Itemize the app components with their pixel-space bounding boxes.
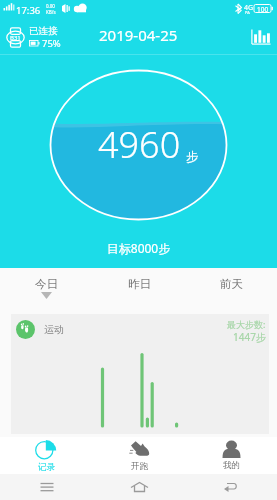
staticText: 开跑 (131, 461, 148, 472)
staticText: PA (245, 10, 250, 15)
staticText: 我的 (223, 460, 240, 471)
button[interactable]: 记录 (0, 437, 93, 474)
button[interactable]: 我的 (185, 437, 277, 474)
button[interactable]: 开跑 (93, 437, 185, 474)
staticText: 1447步 (233, 330, 266, 344)
staticText: 100 (257, 5, 269, 14)
staticText: 步 (186, 149, 199, 165)
staticText: 4960 (98, 120, 181, 169)
staticText: 前天 (220, 277, 243, 291)
button[interactable]: Statistics (251, 28, 271, 45)
button[interactable]: 前天 (185, 268, 277, 310)
staticText: 今日 (35, 277, 58, 291)
staticText: 2019-04-25 (99, 25, 178, 45)
button[interactable]: Device (6, 27, 25, 48)
staticText: KB/s (46, 9, 56, 15)
staticText: 最大步数: (227, 318, 266, 330)
staticText: 记录 (38, 462, 55, 473)
staticText: 目标8000步 (0, 240, 277, 256)
button[interactable]: Back (185, 474, 277, 500)
staticText: 昨日 (128, 277, 151, 291)
staticText: 运动 (44, 323, 64, 336)
staticText: 75% (42, 37, 61, 50)
staticText: 已连接 (29, 25, 58, 37)
staticText: 17:36 (16, 4, 41, 17)
button[interactable]: 昨日 (93, 268, 185, 310)
staticText: 4G (244, 3, 254, 13)
button[interactable]: 今日 (0, 268, 93, 310)
button[interactable]: Home (93, 474, 185, 500)
staticText: 0.00 (46, 3, 55, 9)
staticText: B31 (10, 34, 21, 42)
button[interactable]: Recents (0, 474, 93, 500)
